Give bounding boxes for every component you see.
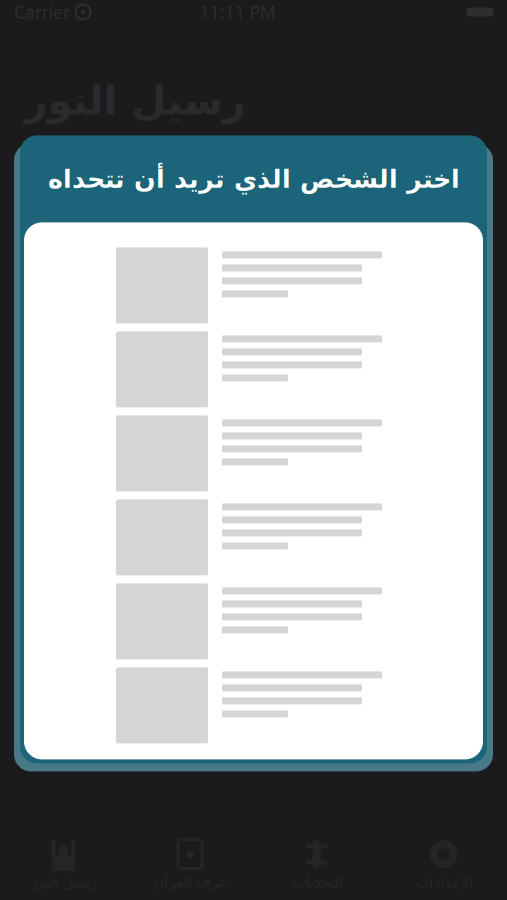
staticText: Carrier [14,0,70,23]
staticText: 11:11 PM [200,0,276,23]
staticText: التحديات [291,874,342,891]
staticText: عرف القرآن [153,874,228,890]
staticText: اختر الشخص الذي تريد أن تتحداه [47,164,459,193]
staticText: رسيل النور [24,78,245,123]
